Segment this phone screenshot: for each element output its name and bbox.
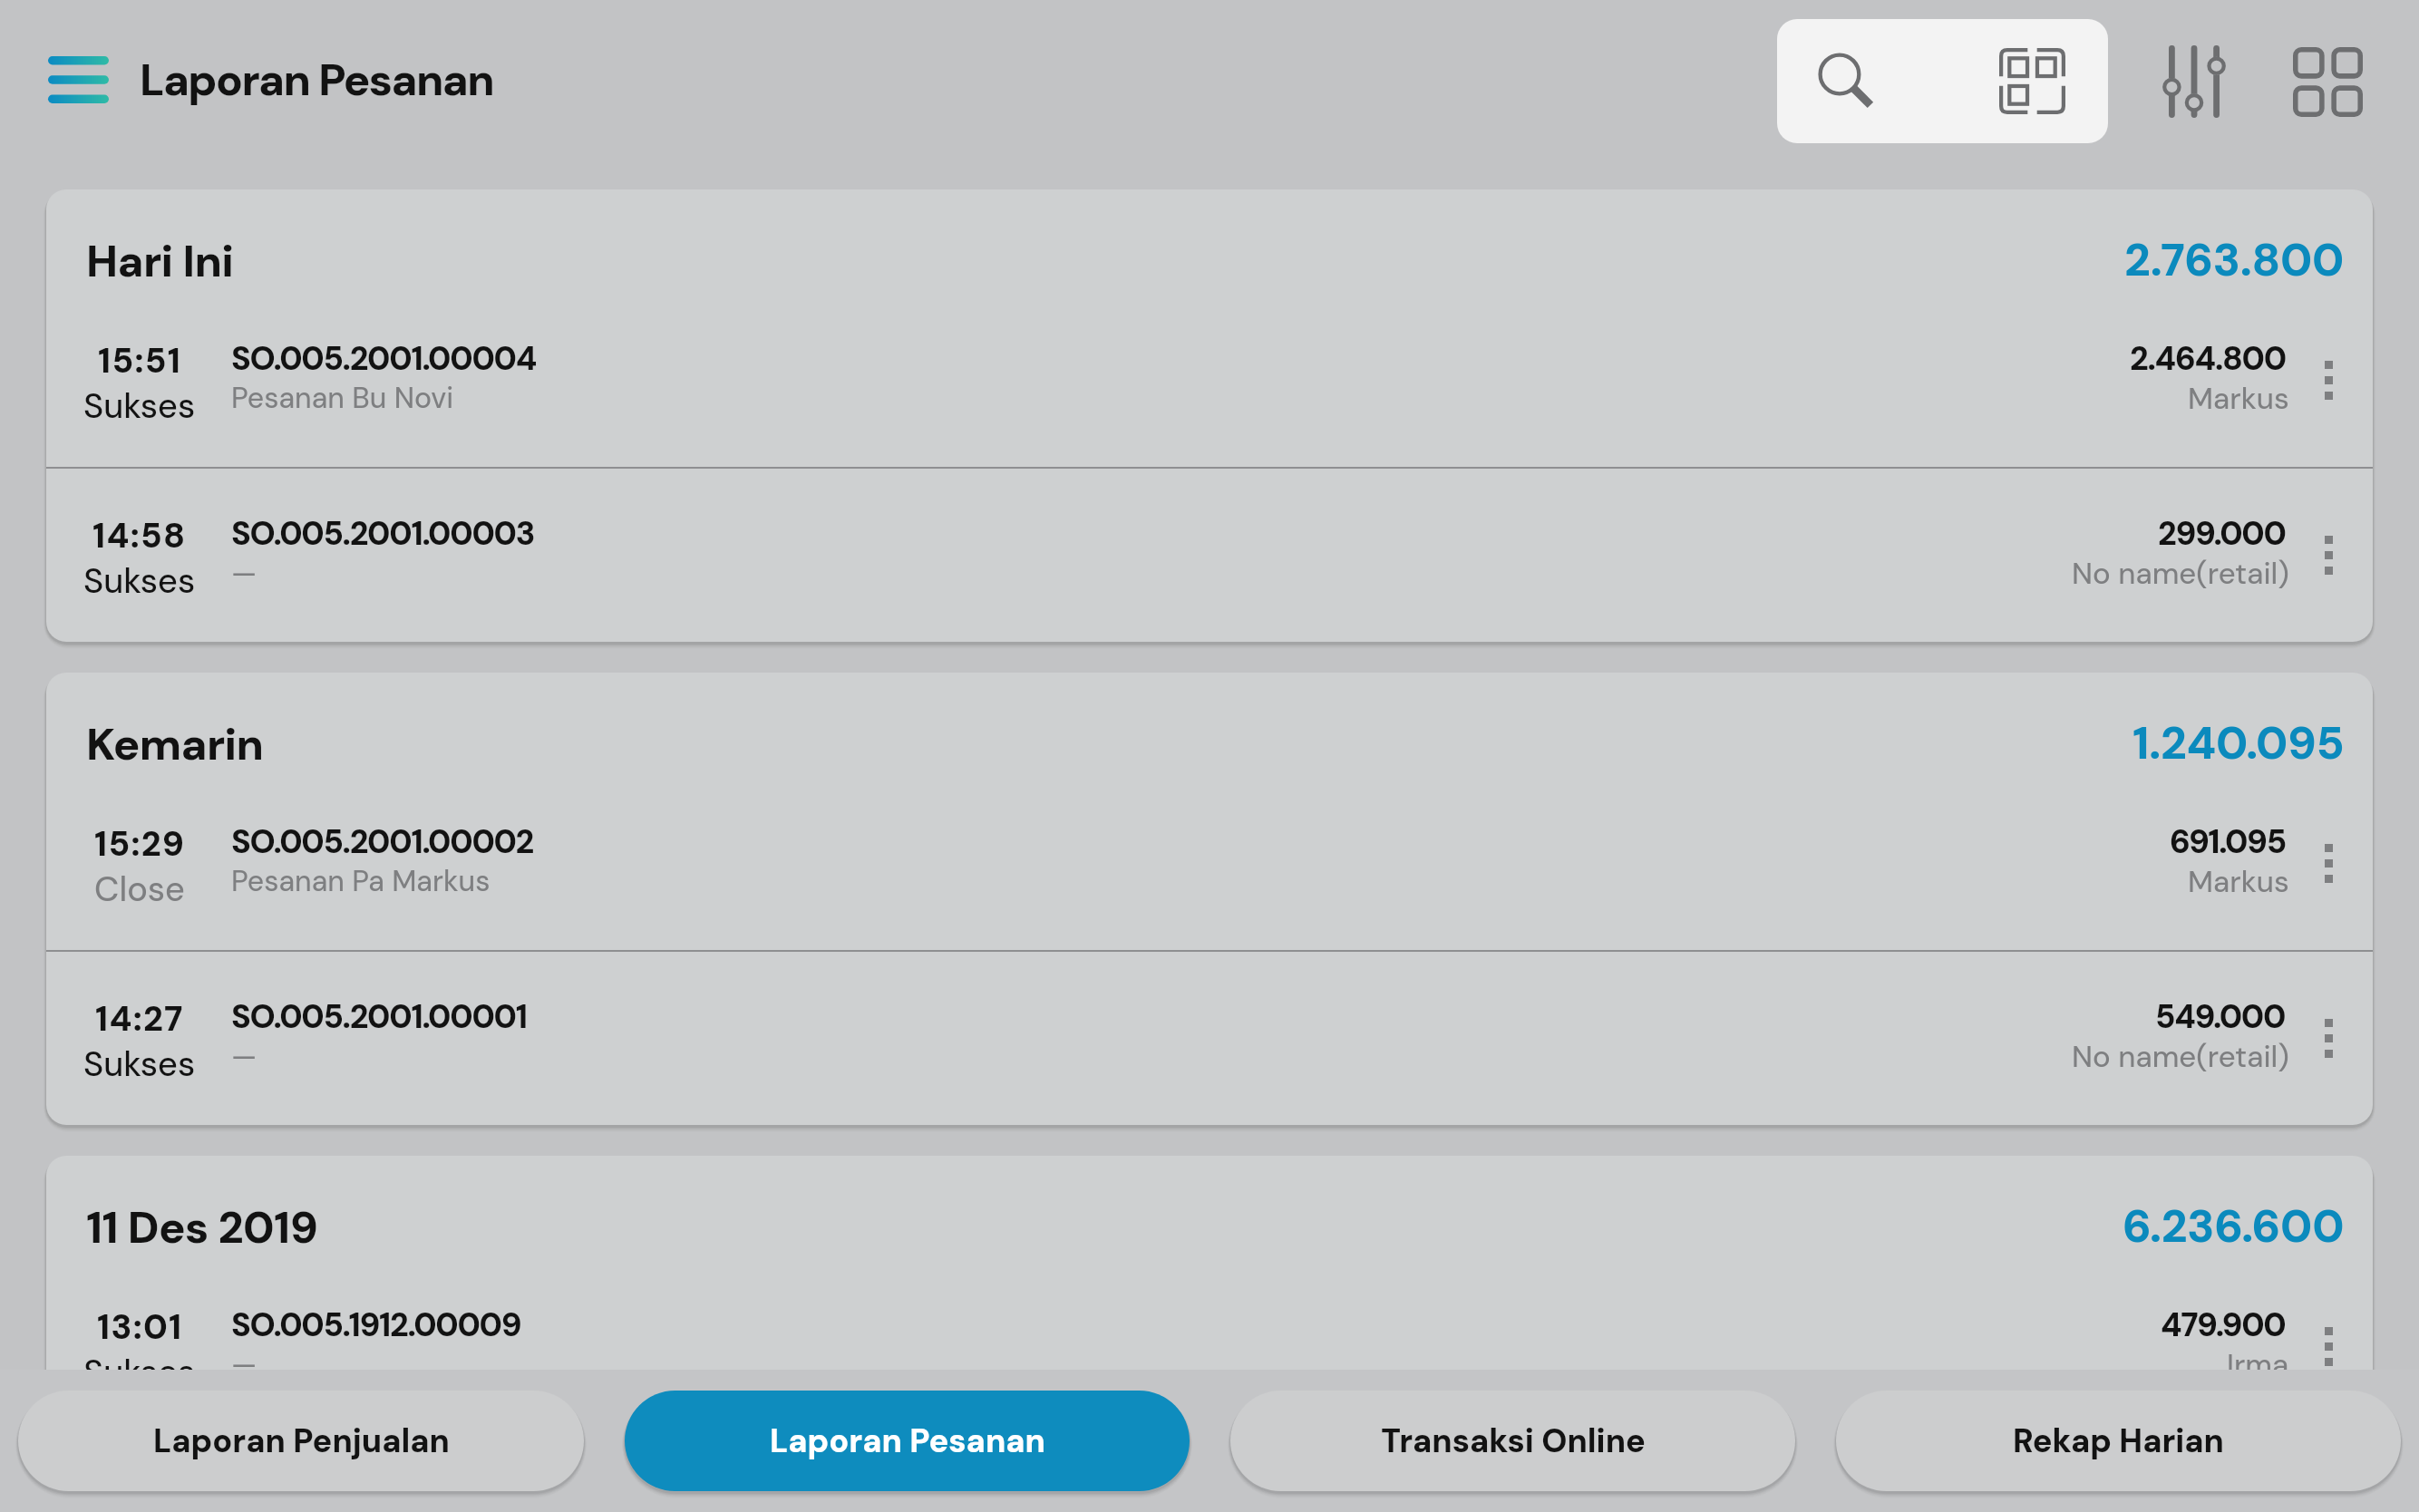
staticText: Laporan Penjualan [153,1420,450,1462]
staticText: 2.464.800 [2130,337,2286,380]
staticText: 1.240.095 [2132,713,2345,772]
button[interactable]: 15:51 [46,294,2373,467]
button[interactable]: More options [2284,1260,2373,1433]
staticText: 11 Des 2019 [86,1198,318,1256]
staticText: Close [94,867,185,911]
staticText: 299.000 [2158,512,2286,555]
staticText: Transaksi Online [1381,1420,1646,1462]
staticText: 13:01 [97,1304,183,1349]
button[interactable]: Open navigation menu [48,56,109,103]
staticText: SO.005.2001.00001 [231,995,527,1038]
staticText: 549.000 [2155,995,2286,1038]
button[interactable]: Rekap Harian [1836,1391,2401,1491]
staticText: Pesanan Bu Novi [231,379,454,417]
staticText: Irma [2227,1345,2289,1384]
staticText: 6.236.600 [2123,1197,2345,1255]
button[interactable]: 14:27 [46,952,2373,1125]
staticText: 15:51 [98,338,182,383]
staticText: — [231,1037,257,1075]
staticText: 14:27 [95,996,184,1041]
button[interactable]: 15:29 [46,777,2373,950]
button[interactable]: More options [2284,952,2373,1125]
staticText: — [231,1345,257,1383]
staticText: SO.005.2001.00004 [231,337,537,380]
staticText: 691.095 [2170,820,2286,863]
button[interactable]: Laporan Penjualan [18,1391,584,1491]
button[interactable]: Transaksi Online [1230,1391,1795,1491]
staticText: No name(retail) [2072,554,2289,593]
staticText: Kemarin [86,715,264,773]
staticText: No name(retail) [2072,1037,2289,1076]
button[interactable]: Filter [2149,36,2239,127]
staticText: 2.763.800 [2124,230,2345,289]
staticText: SO.005.2001.00003 [231,512,535,555]
staticText: Sukses [83,1350,196,1394]
staticText: — [231,554,257,592]
staticText: 14:58 [92,513,187,557]
staticText: Sukses [83,558,196,603]
button[interactable]: More options [2284,777,2373,950]
staticText: SO.005.1912.00009 [231,1304,521,1346]
staticText: SO.005.2001.00002 [231,820,534,863]
staticText: Sukses [83,383,196,428]
button[interactable]: 14:58 [46,469,2373,642]
staticText: Sukses [83,1042,196,1086]
button[interactable]: Laporan Pesanan [625,1391,1190,1491]
staticText: 15:29 [94,821,186,866]
staticText: Markus [2188,862,2289,901]
staticText: Rekap Harian [2013,1420,2224,1462]
staticText: Markus [2188,379,2289,418]
button[interactable]: Search [1777,19,2108,143]
button[interactable]: 13:01 [46,1260,2373,1433]
button[interactable]: More options [2284,469,2373,642]
staticText: Pesanan Pa Markus [231,862,491,900]
staticText: Laporan Pesanan [770,1420,1045,1462]
staticText: 479.900 [2161,1304,2286,1346]
button[interactable]: Grid view [2282,36,2373,127]
staticText: Laporan Pesanan [140,51,494,109]
staticText: Hari Ini [86,232,234,290]
button[interactable]: More options [2284,294,2373,467]
